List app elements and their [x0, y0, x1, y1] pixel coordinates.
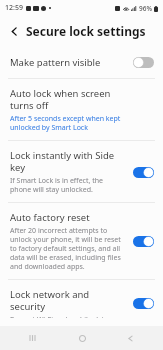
button[interactable]: Back — [115, 326, 145, 350]
staticText: Lock instantly with Side key — [10, 149, 125, 174]
button[interactable]: Make pattern visible toggle — [131, 54, 155, 70]
staticText: Prevent Wi-Fi and mobile data from being… — [10, 315, 125, 318]
button[interactable]: Auto lock when screen turns off — [0, 79, 163, 141]
staticText: Secure lock settings — [26, 23, 146, 39]
staticText: If Smart Lock is in effect, the phone wi… — [10, 176, 125, 194]
button[interactable]: Lock instantly with Side key — [0, 141, 163, 203]
staticText: Auto lock when screen turns off — [10, 87, 125, 112]
staticText: After 20 incorrect attempts to unlock yo… — [10, 226, 125, 271]
button[interactable]: Home — [67, 326, 97, 350]
button[interactable]: Auto factory reset toggle — [131, 233, 155, 249]
staticText: After 5 seconds except when kept unlocke… — [10, 114, 125, 132]
button[interactable]: Lock network and security — [0, 280, 163, 326]
button[interactable]: Auto factory reset — [0, 203, 163, 280]
button[interactable]: Lock instantly with Side key toggle — [131, 164, 155, 180]
button[interactable]: Recent apps — [18, 326, 48, 350]
button[interactable]: Make pattern visible — [0, 46, 163, 79]
staticText: 96% — [139, 4, 152, 13]
staticText: Make pattern visible — [10, 56, 101, 69]
staticText: Auto factory reset — [10, 211, 90, 224]
button[interactable]: Lock network and security toggle — [131, 295, 155, 311]
staticText: 12:59 — [5, 3, 23, 13]
staticText: Lock network and security — [10, 288, 125, 313]
button[interactable]: Back — [6, 23, 22, 39]
